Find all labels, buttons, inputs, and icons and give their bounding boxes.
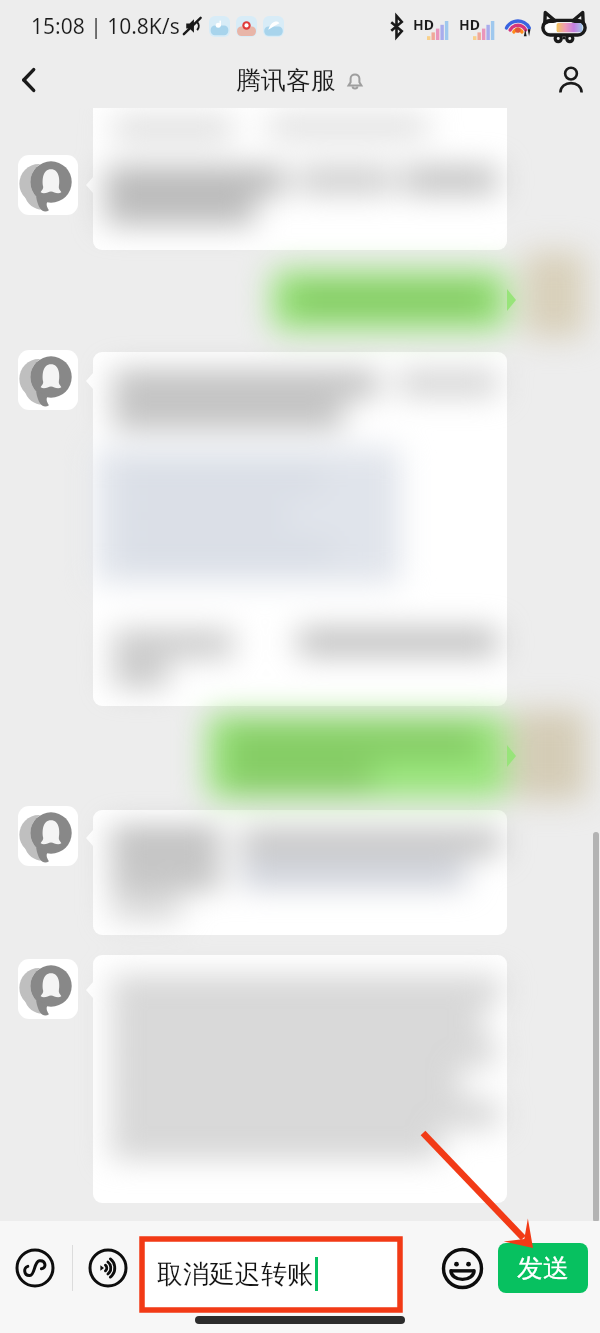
- button[interactable]: 发送: [498, 1243, 588, 1293]
- staticText: 腾讯客服: [236, 65, 336, 96]
- button[interactable]: Emoji: [440, 1246, 484, 1290]
- staticText: 取消延迟转账: [157, 1258, 313, 1291]
- staticText: 15:08 | 10.8K/s: [31, 12, 180, 41]
- staticText: 发送: [517, 1252, 569, 1285]
- button[interactable]: 取消延迟转账: [143, 1240, 397, 1307]
- staticText: HD: [459, 15, 480, 34]
- button[interactable]: Voice input: [88, 1248, 128, 1288]
- button[interactable]: Mini programs: [15, 1248, 55, 1288]
- button[interactable]: Back: [0, 52, 58, 108]
- staticText: HD: [413, 15, 434, 34]
- button[interactable]: Contact info: [542, 52, 600, 108]
